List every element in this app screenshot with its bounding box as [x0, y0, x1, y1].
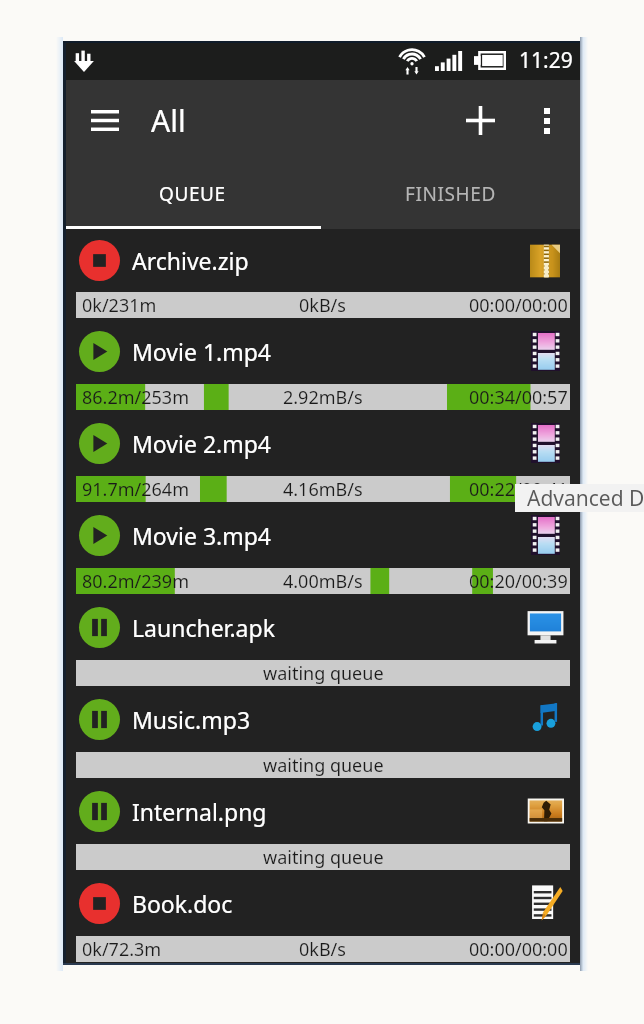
button[interactable]: QUEUE: [63, 161, 321, 226]
staticText: All: [151, 100, 186, 141]
staticText: 00:22/00:41: [469, 477, 568, 502]
staticText: 0k/231m: [82, 293, 157, 318]
staticText: Music.mp3: [132, 704, 251, 735]
staticText: 91.7m/264m: [82, 477, 189, 502]
button[interactable]: Pause: [63, 594, 580, 660]
staticText: 86.2m/253m: [82, 385, 189, 410]
button[interactable]: Pause: [79, 791, 120, 832]
button[interactable]: Play: [79, 515, 120, 556]
staticText: 00:20/00:39: [469, 569, 568, 594]
button[interactable]: Pause: [79, 699, 120, 740]
staticText: 80.2m/239m: [82, 569, 189, 594]
button[interactable]: Stop: [63, 870, 580, 936]
button[interactable]: Pause: [63, 686, 580, 752]
staticText: Movie 2.mp4: [132, 428, 272, 459]
staticText: waiting queue: [263, 661, 384, 686]
staticText: 0kB/s: [299, 937, 346, 962]
staticText: Movie 3.mp4: [132, 520, 272, 551]
staticText: 0kB/s: [299, 293, 346, 318]
staticText: Movie 1.mp4: [132, 336, 272, 367]
staticText: Advanced Downl: [527, 484, 644, 512]
button[interactable]: Play: [79, 423, 120, 464]
staticText: Launcher.apk: [132, 612, 275, 643]
button[interactable]: Stop: [79, 240, 120, 281]
staticText: 00:00/00:00: [469, 937, 568, 962]
staticText: 4.16mB/s: [283, 477, 363, 502]
staticText: 2.92mB/s: [283, 385, 363, 410]
button[interactable]: Pause: [63, 778, 580, 844]
staticText: QUEUE: [159, 181, 226, 207]
staticText: 4.00mB/s: [283, 569, 363, 594]
staticText: waiting queue: [263, 845, 384, 870]
staticText: 00:34/00:57: [469, 385, 568, 410]
button[interactable]: Navigation menu: [77, 80, 133, 161]
button[interactable]: Play: [63, 502, 580, 568]
button[interactable]: Play: [63, 410, 580, 476]
staticText: Archive.zip: [132, 245, 249, 276]
staticText: 00:00/00:00: [469, 293, 568, 318]
staticText: Internal.png: [132, 796, 267, 827]
staticText: Book.doc: [132, 888, 233, 919]
staticText: 11:29: [519, 46, 573, 75]
button[interactable]: Add download: [440, 80, 520, 161]
button[interactable]: Stop: [63, 229, 580, 292]
button[interactable]: Stop: [79, 883, 120, 924]
staticText: 0k/72.3m: [82, 937, 162, 962]
button[interactable]: Play: [79, 331, 120, 372]
button[interactable]: Play: [63, 318, 580, 384]
staticText: FINISHED: [405, 181, 496, 207]
button[interactable]: Pause: [79, 607, 120, 648]
button[interactable]: FINISHED: [321, 161, 580, 226]
button[interactable]: More options: [520, 80, 573, 161]
staticText: waiting queue: [263, 753, 384, 778]
